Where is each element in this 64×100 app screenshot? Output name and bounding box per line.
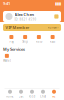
staticText: Wallet <box>3 59 11 62</box>
staticText: Feed <box>28 95 35 98</box>
button[interactable]: Feed <box>26 90 37 98</box>
button[interactable]: VIP Member <box>3 24 61 31</box>
staticText: 9:41 <box>3 1 10 6</box>
staticText: Renew › <box>47 26 58 29</box>
staticText: Alex Chen <box>14 12 34 17</box>
staticText: My Services <box>3 46 25 52</box>
button[interactable]: Cart <box>15 90 26 98</box>
button[interactable]: Recv <box>32 35 46 43</box>
staticText: ▮▮▮ <box>55 1 61 6</box>
staticText: Chat <box>40 95 46 98</box>
button[interactable]: Wallet <box>0 54 14 62</box>
button[interactable]: Rate <box>46 35 60 43</box>
staticText: Ship <box>22 40 28 43</box>
staticText: Pay <box>9 40 13 43</box>
staticText: VIP Member <box>5 25 29 30</box>
staticText: Me <box>52 95 56 98</box>
staticText: Rate <box>50 40 56 43</box>
button[interactable]: Home <box>4 90 15 98</box>
button[interactable]: Ship <box>18 35 32 43</box>
button[interactable]: Pay <box>4 35 18 43</box>
staticText: Cart <box>18 95 23 98</box>
button[interactable]: Me <box>48 90 59 98</box>
staticText: Home <box>6 95 14 98</box>
staticText: Recv <box>36 40 42 43</box>
button[interactable]: Alex Chen <box>3 11 61 22</box>
button[interactable]: Chat <box>37 90 48 98</box>
staticText: ID: 8821 4590 <box>14 18 36 21</box>
